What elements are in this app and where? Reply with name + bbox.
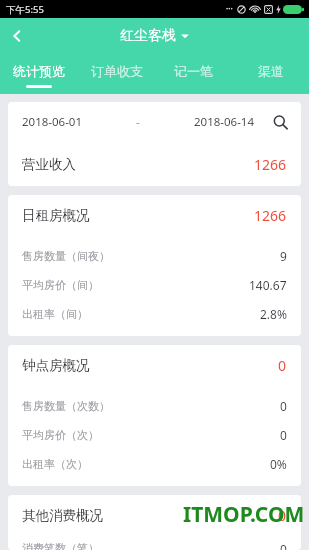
staticText: 140.67 bbox=[249, 277, 287, 293]
staticText: 售房数量（间夜） bbox=[22, 249, 110, 263]
staticText: 1266 bbox=[254, 206, 287, 225]
staticText: 钟点房概况 bbox=[22, 357, 90, 374]
staticText: 统计预览 bbox=[13, 63, 65, 79]
button[interactable]: 2018-06-01 bbox=[8, 102, 301, 142]
button[interactable]: 营业收入 bbox=[8, 142, 301, 186]
staticText: 2018-06-01 bbox=[22, 114, 83, 130]
button[interactable]: 其他消费概况 bbox=[8, 495, 301, 535]
button[interactable]: 平均房价（次） bbox=[8, 420, 301, 449]
button[interactable]: 出租率（次） bbox=[8, 449, 301, 478]
button[interactable]: Search bbox=[269, 111, 291, 133]
button[interactable]: 平均房价（间） bbox=[8, 270, 301, 299]
button[interactable]: 售房数量（间夜） bbox=[8, 241, 301, 270]
staticText: 0 bbox=[280, 398, 287, 414]
staticText: ••• bbox=[226, 5, 233, 13]
staticText: 平均房价（间） bbox=[22, 278, 99, 292]
button[interactable]: 记一笔 bbox=[155, 54, 232, 94]
staticText: 1266 bbox=[254, 155, 287, 174]
button[interactable]: 消费笔数（笔） bbox=[8, 541, 301, 550]
staticText: 记一笔 bbox=[174, 63, 213, 79]
staticText: 营业收入 bbox=[22, 156, 76, 173]
staticText: 9 bbox=[280, 248, 287, 264]
button[interactable]: 钟点房概况 bbox=[8, 345, 301, 385]
staticText: 2.8% bbox=[260, 306, 287, 322]
staticText: 红尘客栈 bbox=[120, 27, 176, 45]
staticText: 2018-06-14 bbox=[194, 114, 255, 130]
staticText: ITMOP.COM bbox=[183, 500, 305, 529]
staticText: 消费笔数（笔） bbox=[22, 541, 99, 550]
button[interactable]: 售房数量（次数） bbox=[8, 391, 301, 420]
button[interactable]: 渠道 bbox=[232, 54, 309, 94]
staticText: 售房数量（次数） bbox=[22, 399, 110, 413]
button[interactable]: 出租率（间） bbox=[8, 299, 301, 328]
staticText: 0 bbox=[278, 506, 287, 525]
staticText: 渠道 bbox=[258, 63, 284, 79]
staticText: 0 bbox=[278, 356, 287, 375]
staticText: 其他消费概况 bbox=[22, 507, 103, 524]
staticText: 出租率（次） bbox=[22, 457, 88, 471]
staticText: 0% bbox=[270, 456, 287, 472]
staticText: 0 bbox=[280, 541, 287, 550]
button[interactable]: 红尘客栈 bbox=[120, 27, 189, 45]
staticText: 订单收支 bbox=[91, 63, 143, 79]
staticText: 0 bbox=[280, 427, 287, 443]
button[interactable]: 日租房概况 bbox=[8, 195, 301, 235]
button[interactable]: 订单收支 bbox=[78, 54, 155, 94]
staticText: 下午5:55 bbox=[6, 3, 44, 16]
staticText: 日租房概况 bbox=[22, 207, 90, 224]
button[interactable]: 统计预览 bbox=[0, 54, 78, 94]
staticText: 平均房价（次） bbox=[22, 428, 99, 442]
staticText: - bbox=[136, 114, 140, 130]
staticText: 出租率（间） bbox=[22, 307, 88, 321]
button[interactable]: Back bbox=[0, 19, 34, 53]
